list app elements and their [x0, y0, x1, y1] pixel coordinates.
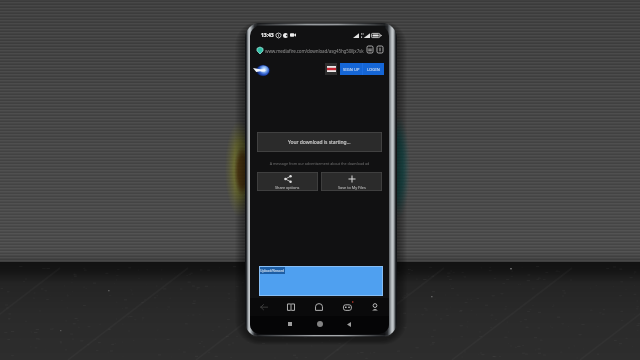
staticText: www.mediafire.com/download/asg45hg50lljx… [265, 48, 364, 54]
button[interactable]: Downloads [367, 46, 373, 53]
button[interactable]: Your download is starting... [257, 132, 382, 152]
staticText: Save to My Files [338, 185, 366, 190]
button[interactable]: Home [313, 317, 327, 331]
button[interactable]: Bookmarks [277, 298, 305, 316]
staticText: 13:43 [261, 32, 274, 39]
staticText: A message from our advertisement about t… [257, 161, 382, 166]
button[interactable]: LOGIN [363, 63, 384, 75]
button[interactable]: Language [325, 63, 337, 75]
button[interactable]: Home [305, 298, 333, 316]
staticText: SIGN UP [343, 67, 360, 72]
button[interactable]: Back [250, 298, 277, 316]
staticText: Share options [275, 185, 300, 190]
button[interactable]: SIGN UP [340, 63, 362, 75]
staticText: Your download is starting... [288, 139, 351, 146]
button[interactable]: Profile [361, 298, 389, 316]
staticText: Upload/Reward [260, 268, 285, 273]
button[interactable]: Tabs [333, 298, 361, 316]
staticText: LOGIN [367, 67, 380, 72]
button[interactable]: Back [342, 317, 356, 331]
button[interactable]: Recent apps [283, 317, 297, 331]
button[interactable]: Share options [257, 172, 318, 191]
button[interactable]: More options [377, 46, 383, 53]
button[interactable]: Save to My Files [321, 172, 382, 191]
button[interactable]: Upload/Reward [259, 266, 383, 296]
button[interactable]: Site information [257, 47, 263, 54]
